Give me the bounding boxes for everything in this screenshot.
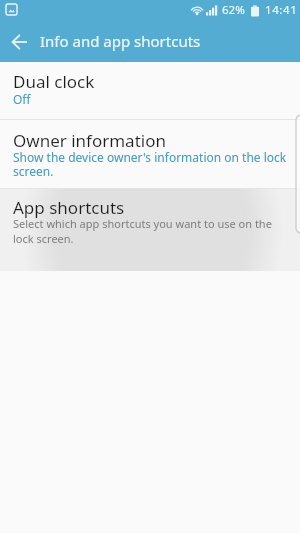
staticText: Off	[13, 91, 31, 107]
staticText: 62%	[222, 2, 245, 18]
staticText: Show the device owner's information on t…	[13, 149, 287, 180]
button[interactable]	[0, 24, 40, 62]
button[interactable]	[0, 120, 300, 188]
staticText: Dual clock	[13, 70, 95, 93]
staticText: Owner information	[13, 129, 166, 152]
button[interactable]	[0, 189, 300, 271]
staticText: Select which app shortcuts you want to u…	[13, 216, 272, 246]
staticText: 14:41	[265, 2, 298, 18]
staticText: App shortcuts	[13, 196, 125, 219]
button[interactable]	[0, 62, 300, 120]
staticText: Info and app shortcuts	[40, 31, 201, 51]
